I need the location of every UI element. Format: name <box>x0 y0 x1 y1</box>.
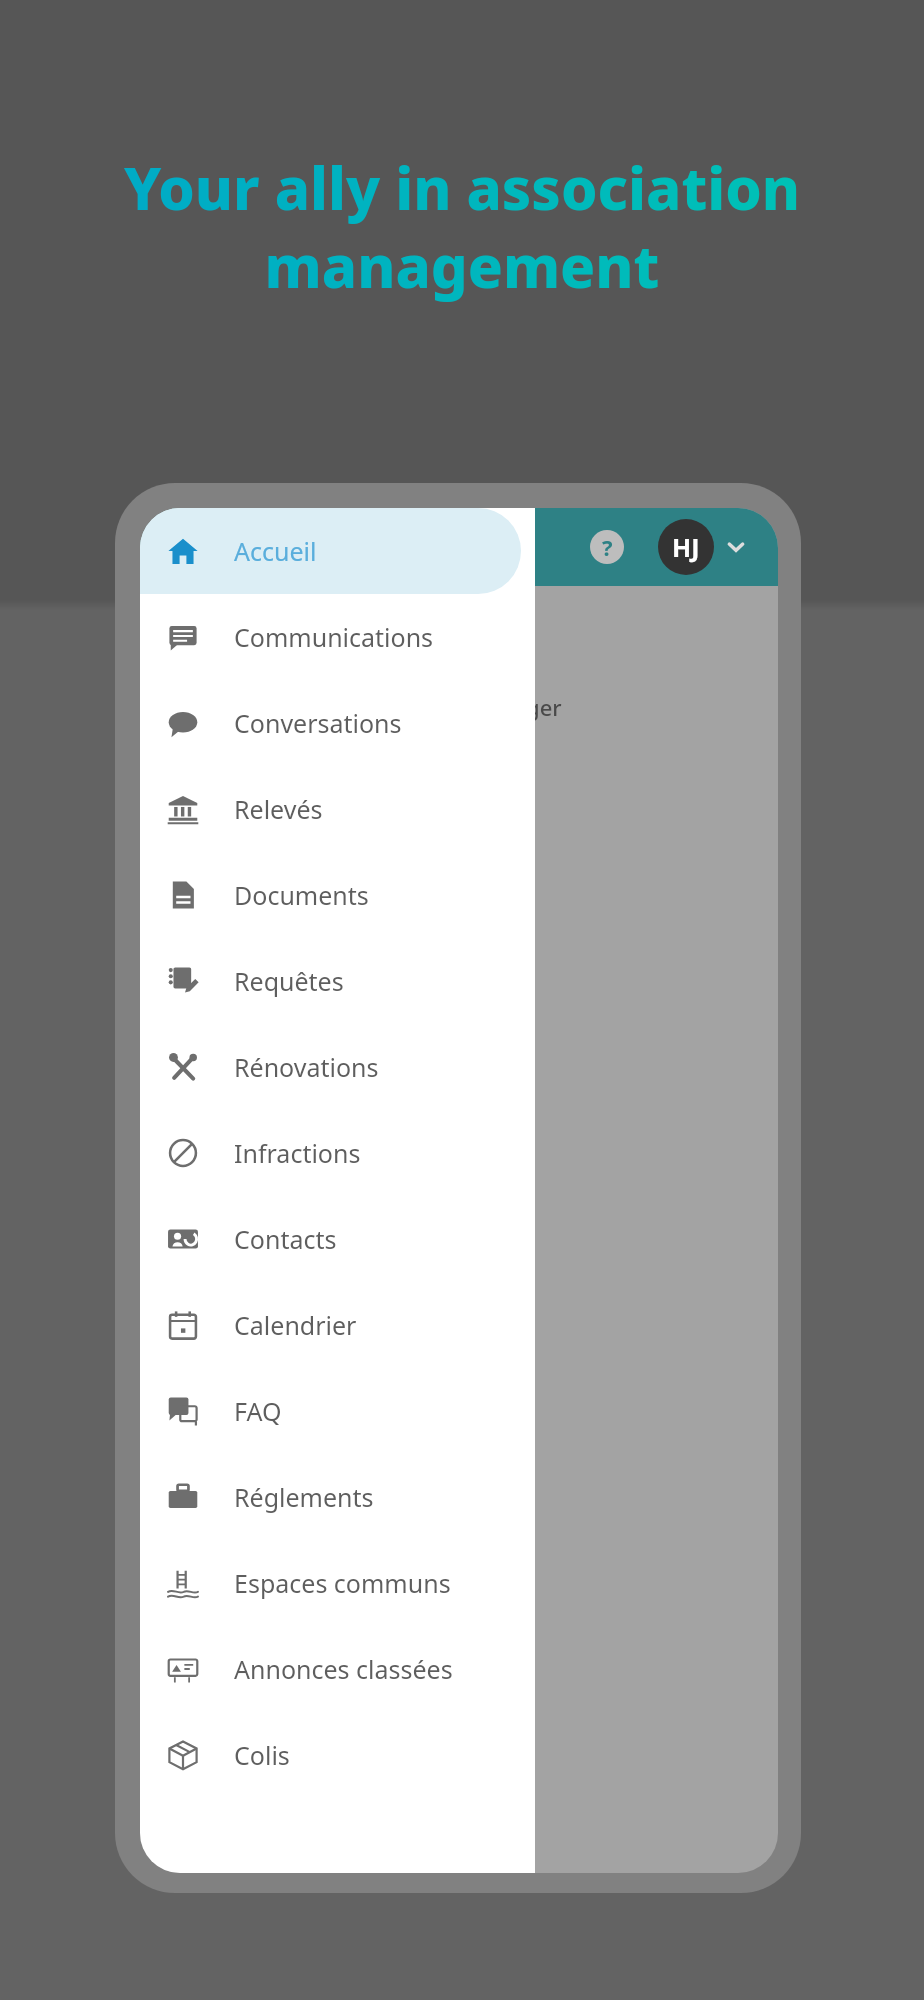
button[interactable]: Communications <box>140 594 521 680</box>
staticText: Documents <box>234 878 369 912</box>
staticText: ? <box>602 532 613 562</box>
button[interactable]: Rénovations <box>140 1024 521 1110</box>
button[interactable]: Réglements <box>140 1454 521 1540</box>
button[interactable]: Help <box>586 526 628 568</box>
button[interactable]: Annonces classées <box>140 1626 521 1712</box>
staticText: Communications <box>234 620 434 654</box>
staticText: FAQ <box>234 1394 282 1428</box>
staticText: Espaces communs <box>234 1566 451 1600</box>
button[interactable]: Accueil <box>140 508 521 594</box>
staticText: ger <box>526 692 562 722</box>
staticText: Requêtes <box>234 964 344 998</box>
button[interactable]: Infractions <box>140 1110 521 1196</box>
staticText: Colis <box>234 1738 290 1772</box>
staticText: Conversations <box>234 706 402 740</box>
button[interactable]: Requêtes <box>140 938 521 1024</box>
staticText: Relevés <box>234 792 323 826</box>
staticText: Calendrier <box>234 1308 357 1342</box>
staticText: Infractions <box>234 1136 361 1170</box>
button[interactable]: Colis <box>140 1712 521 1798</box>
button[interactable]: FAQ <box>140 1368 521 1454</box>
staticText: Your ally in association management <box>40 148 884 305</box>
button[interactable]: HJ <box>658 519 748 575</box>
button[interactable]: Contacts <box>140 1196 521 1282</box>
button[interactable]: Calendrier <box>140 1282 521 1368</box>
button[interactable]: Documents <box>140 852 521 938</box>
staticText: Rénovations <box>234 1050 379 1084</box>
button[interactable]: Conversations <box>140 680 521 766</box>
staticText: Accueil <box>234 534 317 568</box>
staticText: Annonces classées <box>234 1652 453 1686</box>
staticText: Réglements <box>234 1480 374 1514</box>
button[interactable]: Espaces communs <box>140 1540 521 1626</box>
button[interactable]: Relevés <box>140 766 521 852</box>
staticText: HJ <box>672 530 700 564</box>
staticText: Contacts <box>234 1222 337 1256</box>
